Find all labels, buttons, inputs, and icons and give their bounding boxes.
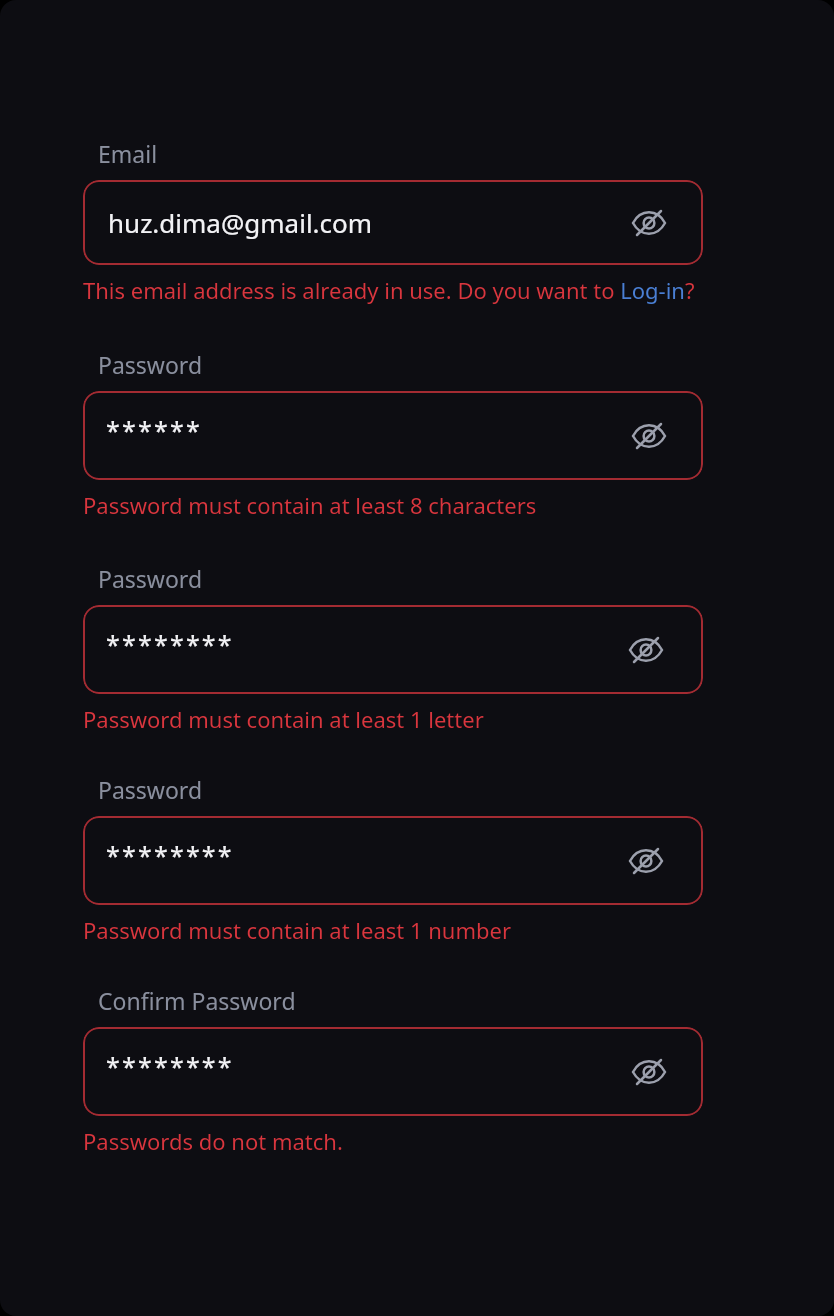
button[interactable]: Toggle password visibility [618,622,674,678]
button[interactable]: Toggle password visibility [618,833,674,889]
button[interactable]: huz.dima@gmail.com [83,180,703,265]
staticText: Confirm Password [98,985,296,1016]
button[interactable]: Toggle password visibility [621,195,677,251]
staticText: Password must contain at least 1 number [83,915,512,945]
staticText: ******** [106,838,234,872]
staticText: ****** [106,413,202,447]
staticText: Passwords do not match. [83,1126,343,1156]
staticText: huz.dima@gmail.com [108,205,373,240]
button[interactable]: ******** [83,1027,703,1116]
button[interactable]: Toggle password visibility [621,1044,677,1100]
button[interactable]: Toggle password visibility [621,408,677,464]
staticText: Password must contain at least 8 charact… [83,490,537,520]
staticText: This email address is already in use. Do… [83,275,695,305]
button[interactable]: ******** [83,816,703,905]
staticText: Password [98,349,203,380]
staticText: ******** [106,627,234,661]
staticText: Password must contain at least 1 letter [83,704,484,734]
staticText: Password [98,563,203,594]
staticText: Password [98,774,203,805]
button[interactable]: ****** [83,391,703,480]
button[interactable]: ******** [83,605,703,694]
staticText: ******** [106,1049,234,1083]
staticText: Email [98,138,158,169]
